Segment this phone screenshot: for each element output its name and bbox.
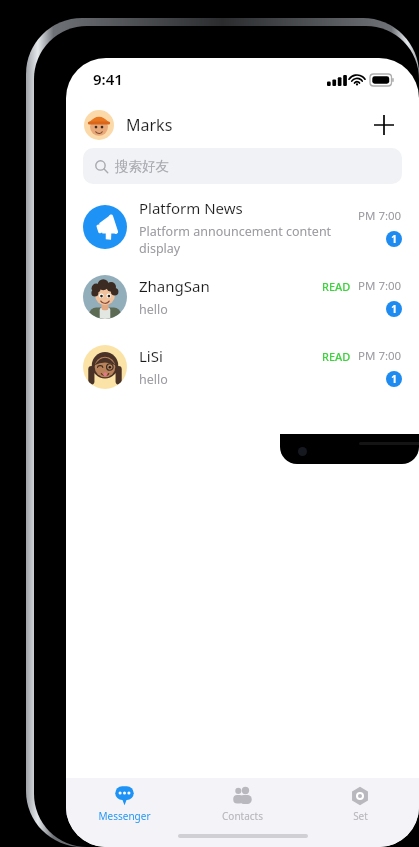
button[interactable]: Messenger bbox=[66, 782, 183, 826]
staticText: 1 bbox=[391, 302, 397, 316]
button[interactable]: Set bbox=[301, 783, 419, 826]
staticText: PM 7:00 bbox=[358, 348, 402, 364]
staticText: Messenger bbox=[98, 809, 151, 823]
staticText: PM 7:00 bbox=[358, 278, 402, 294]
staticText: ZhangSan bbox=[139, 276, 210, 296]
button[interactable]: ZhangSan bbox=[66, 262, 419, 332]
staticText: 1 bbox=[391, 232, 397, 246]
button[interactable]: New conversation bbox=[367, 108, 401, 142]
staticText: 搜索好友 bbox=[115, 158, 169, 175]
staticText: 9:41 bbox=[93, 69, 123, 89]
staticText: LiSi bbox=[139, 346, 163, 366]
button[interactable]: 搜索好友 bbox=[83, 148, 402, 184]
staticText: 1 bbox=[391, 372, 397, 386]
button[interactable]: LiSi bbox=[66, 332, 419, 402]
staticText: PM 7:00 bbox=[358, 208, 402, 224]
staticText: READ bbox=[322, 349, 351, 364]
button[interactable]: Contacts bbox=[183, 782, 301, 826]
staticText: Platform News bbox=[139, 198, 243, 218]
staticText: Marks bbox=[126, 114, 173, 136]
staticText: hello bbox=[139, 371, 168, 388]
button[interactable]: Platform News bbox=[66, 192, 419, 262]
button[interactable]: Marks bbox=[84, 110, 173, 140]
staticText: Set bbox=[353, 809, 368, 823]
staticText: hello bbox=[139, 301, 168, 318]
staticText: READ bbox=[322, 279, 351, 294]
staticText: Platform announcement content display bbox=[139, 223, 352, 257]
staticText: Contacts bbox=[222, 809, 263, 823]
